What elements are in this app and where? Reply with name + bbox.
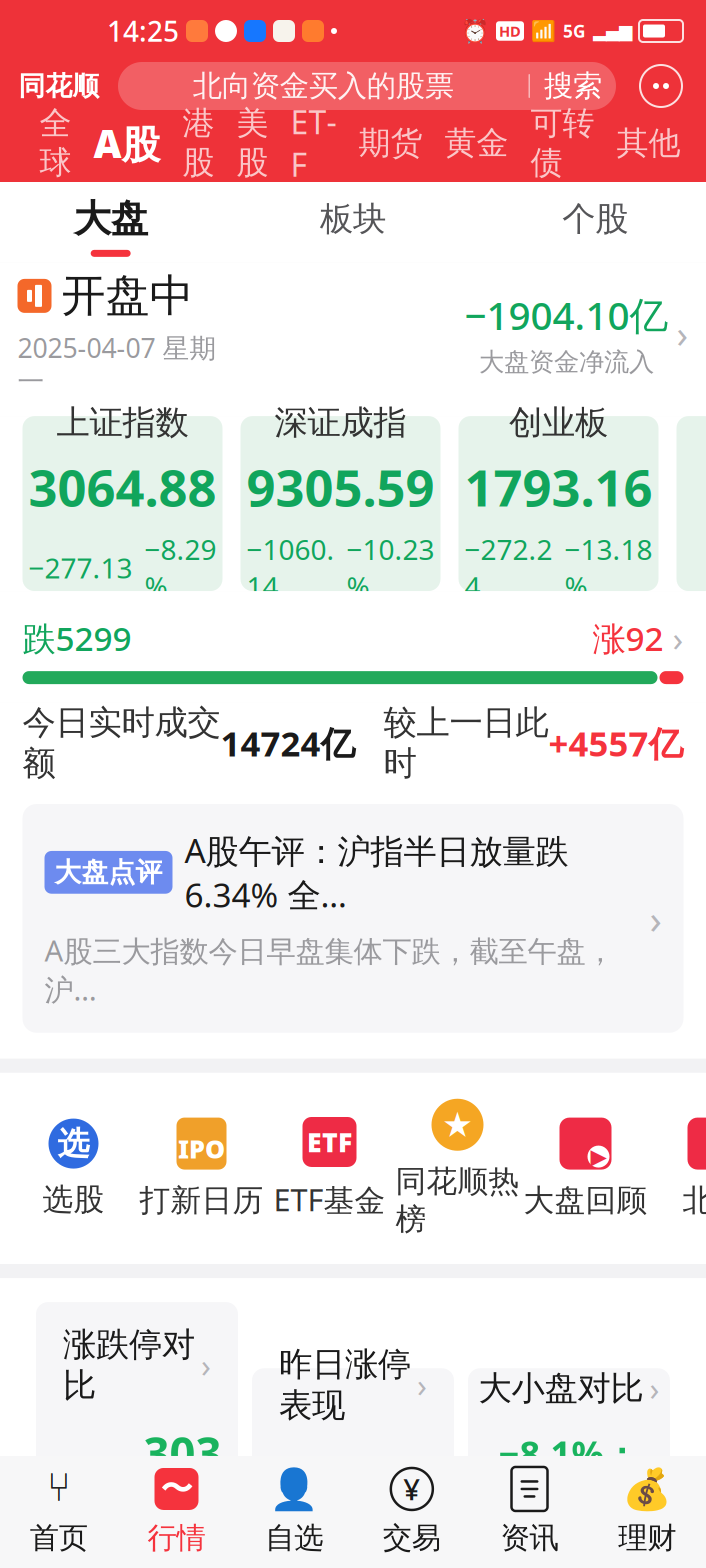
button[interactable]: A股: [82, 110, 171, 176]
staticText: 首页: [30, 1520, 88, 1556]
button[interactable]: 👤: [235, 1466, 353, 1556]
staticText: 较上一日此时: [383, 702, 548, 784]
button[interactable]: 〜: [118, 1466, 235, 1556]
button[interactable]: 港股: [171, 110, 225, 176]
button[interactable]: ¥: [353, 1466, 471, 1556]
button[interactable]: 板块: [232, 198, 474, 254]
staticText: 全球: [39, 104, 71, 182]
button[interactable]: 个股: [474, 198, 706, 254]
staticText: 个股: [562, 198, 628, 239]
staticText: 3064.88: [28, 453, 216, 520]
staticText: ★: [442, 1105, 473, 1144]
staticText: ›: [676, 309, 688, 358]
button[interactable]: 资讯: [471, 1466, 588, 1556]
button[interactable]: 全球: [28, 110, 82, 176]
staticText: 9305.59: [246, 453, 434, 520]
button[interactable]: ETF: [265, 1117, 393, 1220]
button[interactable]: 黄金: [433, 110, 519, 176]
staticText: 同花顺热榜: [395, 1163, 519, 1238]
staticText: 行情: [147, 1520, 205, 1556]
staticText: 1793.16: [464, 453, 652, 520]
button[interactable]: 大小盘对比: [468, 1368, 670, 1568]
staticText: A股: [93, 117, 160, 169]
staticText: 大小盘对比: [478, 1368, 643, 1409]
staticText: 上证指数: [56, 402, 188, 443]
button[interactable]: 其他: [605, 110, 691, 176]
staticText: 港股: [182, 104, 214, 182]
button[interactable]: 深证成指: [240, 416, 440, 591]
staticText: ▂▄▆: [593, 21, 632, 41]
button[interactable]: 美股: [225, 110, 279, 176]
staticText: A股三大指数今日早盘集体下跌，截至午盘，沪…: [44, 931, 614, 1009]
staticText: 跌5299: [22, 616, 131, 660]
staticText: ›: [417, 1364, 427, 1406]
staticText: 美股: [236, 104, 268, 182]
staticText: 👤: [269, 1466, 319, 1512]
button[interactable]: ⑂: [0, 1466, 118, 1556]
staticText: 自选: [265, 1520, 323, 1556]
button[interactable]: 创业板: [458, 416, 658, 591]
staticText: ›: [649, 1367, 659, 1410]
button[interactable]: −1904.10亿: [464, 289, 688, 378]
button[interactable]: 大盘点评: [0, 804, 706, 1059]
staticText: 打新日历: [139, 1182, 263, 1219]
staticText: IPO: [178, 1132, 225, 1165]
staticText: 小盘股更弱: [496, 1545, 641, 1568]
staticText: −13.18%: [564, 530, 652, 605]
staticText: 其他: [616, 123, 680, 163]
staticText: 大盘资金净流入: [479, 347, 654, 378]
staticText: 深证成指: [274, 402, 406, 443]
button[interactable]: 北交: [649, 1118, 706, 1219]
staticText: 资讯: [500, 1520, 558, 1556]
button[interactable]: ★: [393, 1099, 521, 1238]
staticText: 〜: [160, 1469, 192, 1509]
button[interactable]: ETF: [279, 110, 347, 176]
staticText: −10.23%: [346, 530, 434, 605]
staticText: 2025-04-07 星期一: [17, 330, 216, 398]
staticText: −272.24: [464, 530, 552, 605]
staticText: 选: [57, 1124, 89, 1163]
staticText: 选股: [42, 1181, 104, 1218]
staticText: −8.29%: [144, 530, 216, 605]
staticText: −1060.14: [246, 530, 334, 605]
staticText: 可转债: [530, 104, 594, 182]
button[interactable]: ▶: [521, 1118, 649, 1219]
staticText: ETF: [290, 100, 336, 185]
staticText: 黄金: [444, 123, 508, 163]
button[interactable]: 昨日涨停表现: [252, 1368, 454, 1568]
button[interactable]: 大盘: [0, 196, 232, 257]
staticText: +4557亿: [548, 720, 683, 766]
button[interactable]: 涨跌停对比: [36, 1302, 238, 1568]
button[interactable]: 上证指数: [22, 416, 222, 591]
staticText: 大盘: [74, 196, 148, 242]
button[interactable]: More: [640, 65, 682, 107]
staticText: ETF: [307, 1124, 352, 1160]
button[interactable]: 可转债: [519, 110, 605, 176]
button[interactable]: 💰: [588, 1466, 706, 1556]
staticText: 大盘回顾: [523, 1182, 647, 1219]
staticText: ⏰: [461, 18, 489, 44]
staticText: ›: [663, 615, 683, 661]
staticText: 美农生物20.01%: [295, 1529, 411, 1568]
staticText: 💰: [622, 1466, 672, 1512]
staticText: 交易: [383, 1520, 441, 1556]
staticText: −8.1%：−11.7%: [498, 1430, 639, 1525]
button[interactable]: 期货: [347, 110, 433, 176]
staticText: ETF基金: [273, 1179, 385, 1220]
staticText: 📶: [531, 20, 556, 42]
button[interactable]: IPO: [137, 1118, 265, 1219]
staticText: 13: [52, 1452, 104, 1512]
staticText: 大盘点评: [54, 856, 162, 889]
staticText: HD: [499, 21, 521, 41]
staticText: 14724亿: [220, 720, 355, 766]
staticText: 期货: [358, 123, 422, 163]
button[interactable]: 选: [9, 1119, 137, 1218]
staticText: 北向资金买入的股票: [193, 68, 454, 104]
button[interactable]: 跌5299: [22, 615, 683, 661]
staticText: 搜索: [544, 68, 602, 104]
staticText: ›: [201, 1344, 211, 1386]
staticText: 创业板: [509, 402, 608, 443]
staticText: −1904.10亿: [464, 289, 668, 340]
staticText: 开盘中: [61, 269, 193, 323]
